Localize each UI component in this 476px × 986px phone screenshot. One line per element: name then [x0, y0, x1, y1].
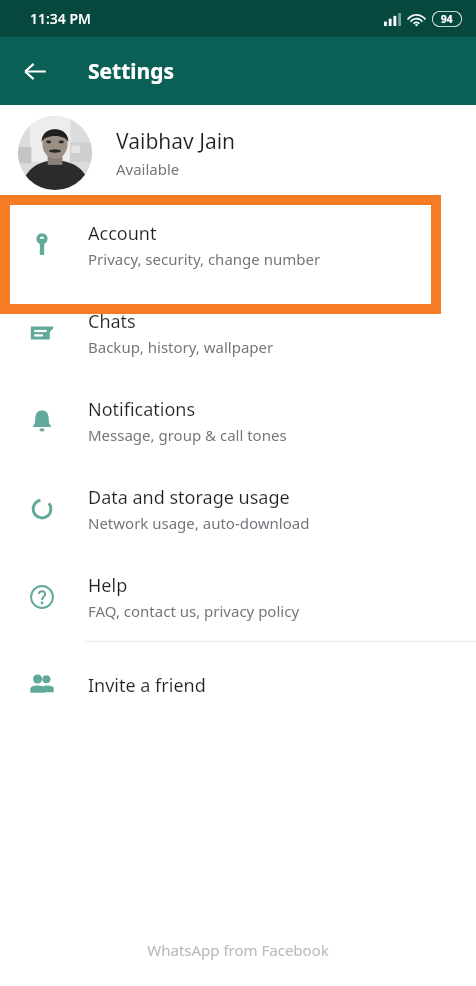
- staticText: Privacy, security, change number: [88, 249, 321, 269]
- staticText: Available: [116, 159, 180, 179]
- staticText: FAQ, contact us, privacy policy: [88, 601, 300, 621]
- staticText: Vaibhav Jain: [116, 127, 236, 156]
- button[interactable]: Account: [0, 201, 476, 289]
- button[interactable]: Vaibhav Jain: [0, 105, 476, 201]
- staticText: Invite a friend: [88, 673, 206, 698]
- button[interactable]: Back: [12, 48, 58, 94]
- staticText: Settings: [88, 57, 175, 86]
- button[interactable]: Invite a friend: [0, 642, 476, 728]
- button[interactable]: Notifications: [0, 377, 476, 465]
- staticText: 94: [441, 12, 453, 26]
- staticText: Backup, history, wallpaper: [88, 337, 274, 357]
- button[interactable]: Data and storage usage: [0, 465, 476, 553]
- staticText: Message, group & call tones: [88, 425, 287, 445]
- button[interactable]: Chats: [0, 289, 476, 377]
- staticText: Chats: [88, 309, 136, 334]
- staticText: Notifications: [88, 397, 196, 422]
- staticText: Network usage, auto-download: [88, 513, 310, 533]
- button[interactable]: Help: [0, 553, 476, 641]
- staticText: Help: [88, 573, 128, 598]
- staticText: WhatsApp from Facebook: [0, 940, 476, 960]
- staticText: 11:34 PM: [30, 9, 91, 28]
- staticText: Data and storage usage: [88, 485, 290, 510]
- staticText: Account: [88, 221, 157, 246]
